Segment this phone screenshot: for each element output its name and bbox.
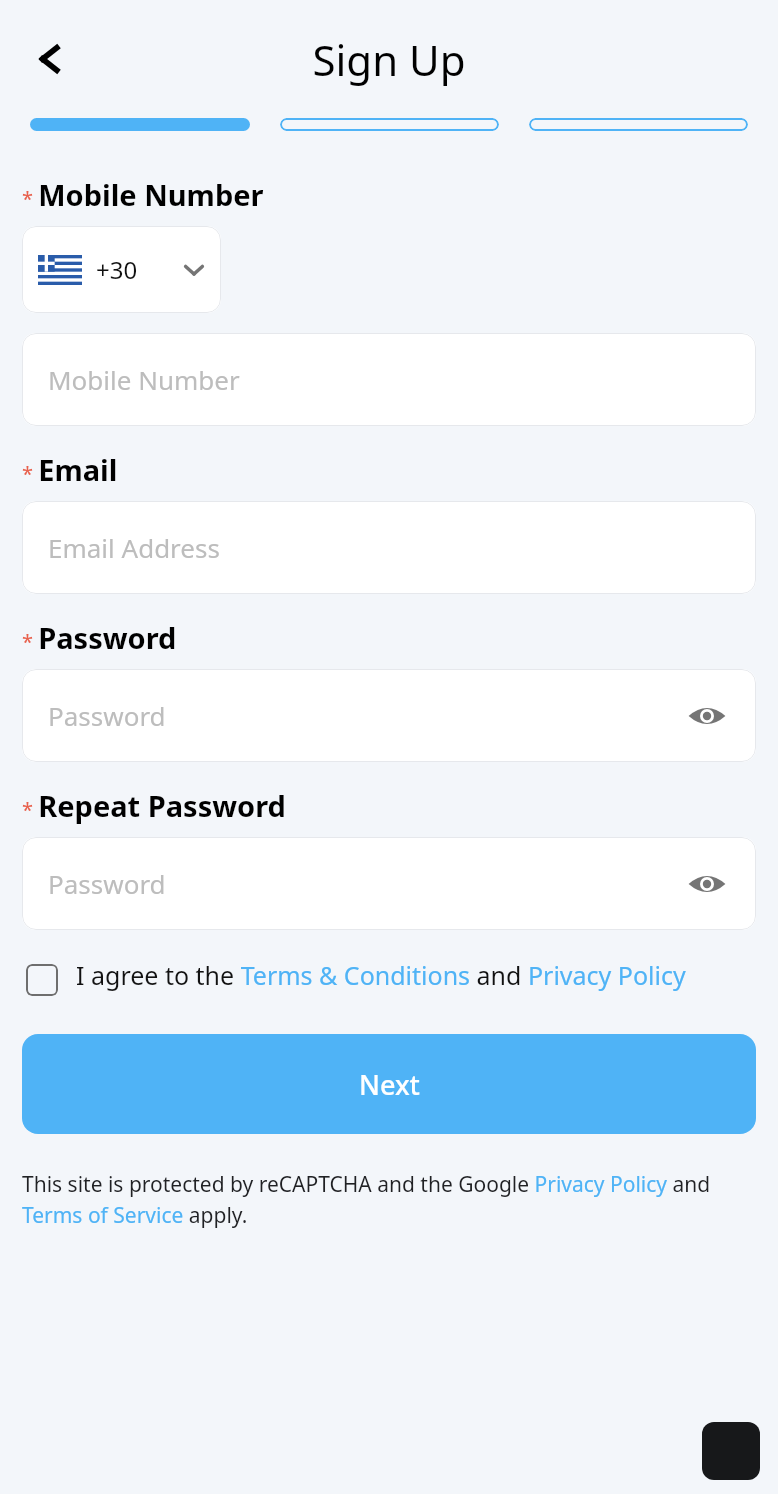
button[interactable]: Next (22, 1034, 756, 1134)
button[interactable]: Show password (684, 861, 730, 907)
button[interactable]: Show password (684, 693, 730, 739)
staticText: * Repeat Password (22, 786, 286, 825)
button[interactable]: Widget (702, 1422, 760, 1480)
staticText: Sign Up (312, 31, 466, 88)
button[interactable]: Step 1 active (30, 118, 250, 131)
button[interactable]: Email Address input (22, 501, 756, 594)
button[interactable]: I agree to the Terms & Conditions and Pr… (22, 958, 756, 996)
staticText: This site is protected by reCAPTCHA and … (22, 1170, 756, 1229)
button[interactable]: Step inactive (529, 118, 748, 131)
staticText: Password (48, 866, 166, 901)
button[interactable]: Step inactive (280, 118, 499, 131)
button[interactable]: Repeat Password input (22, 837, 756, 930)
button[interactable]: Select country code (22, 226, 221, 313)
staticText: Password (48, 698, 166, 733)
staticText: * Password (22, 618, 177, 657)
staticText: * Email (22, 450, 118, 489)
staticText: I agree to the Terms & Conditions and Pr… (76, 958, 686, 992)
button[interactable]: Mobile Number input (22, 333, 756, 426)
staticText: Mobile Number (48, 362, 240, 397)
staticText: +30 (96, 253, 138, 286)
staticText: Email Address (48, 530, 220, 565)
staticText: Next (359, 1066, 420, 1103)
staticText: * Mobile Number (22, 175, 264, 214)
button[interactable]: Back (22, 31, 78, 87)
button[interactable]: Password input (22, 669, 756, 762)
